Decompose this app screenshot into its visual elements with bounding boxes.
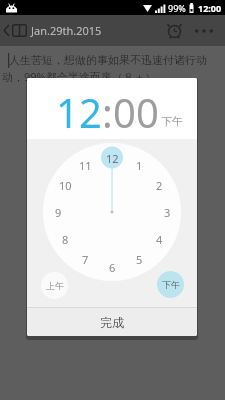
button[interactable]: 下午 <box>157 271 184 298</box>
staticText: 动，99%都会半途而废（８＋） <box>2 69 156 84</box>
button[interactable]: 上午 <box>41 272 68 299</box>
staticText: 6 <box>109 260 116 275</box>
button[interactable] <box>195 26 213 36</box>
staticText: 下午 <box>162 279 180 290</box>
staticText: 12 <box>56 85 102 139</box>
staticText: 99% <box>168 2 186 14</box>
staticText: 上午 <box>46 280 64 291</box>
staticText: 人生苦短，想做的事如果不迅速付诸行动 <box>9 53 207 67</box>
button[interactable]: Jan.29th.2015 <box>0 23 102 38</box>
staticText: 10 <box>59 178 72 193</box>
button[interactable]: 完成 <box>27 308 197 336</box>
staticText: 12 <box>106 151 119 166</box>
button[interactable] <box>166 22 183 39</box>
staticText: 8 <box>62 232 69 247</box>
staticText: 00 <box>113 85 159 139</box>
staticText: 12:00 <box>198 2 222 14</box>
staticText: 1 <box>136 158 143 173</box>
staticText: 5 <box>136 252 143 267</box>
staticText: 7 <box>82 252 89 267</box>
staticText: 完成 <box>100 315 124 330</box>
staticText: Jan.29th.2015 <box>31 23 102 38</box>
staticText: 11 <box>79 158 92 173</box>
staticText: 2 <box>156 178 163 193</box>
staticText: 下午 <box>161 114 183 128</box>
staticText: 3 <box>164 205 171 220</box>
staticText: 4 <box>156 232 163 247</box>
staticText: 9 <box>55 205 62 220</box>
staticText: : <box>102 85 113 139</box>
